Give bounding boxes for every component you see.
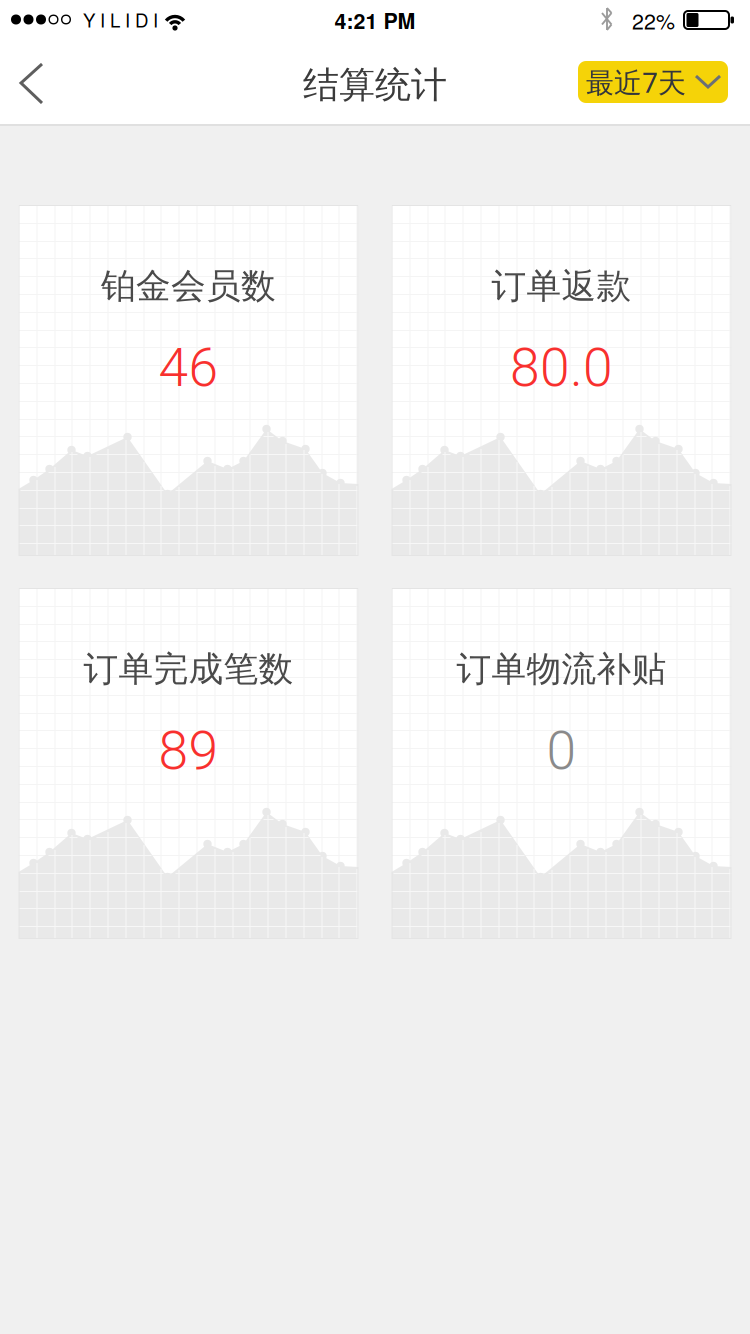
staticText: 铂金会员数 [101,265,276,308]
staticText: 22% [632,5,675,35]
staticText: 89 [158,720,218,782]
staticText: 0 [546,720,576,782]
staticText: 4:21 PM [334,5,415,35]
staticText: 订单完成笔数 [83,648,293,691]
staticText: 80.0 [510,337,613,399]
staticText: 订单返款 [491,265,631,308]
staticText: Y I L I D I [83,6,158,33]
staticText: 最近7天 [586,63,686,101]
staticText: 46 [158,337,218,399]
staticText: 结算统计 [303,63,447,107]
staticText: 订单物流补贴 [456,648,666,691]
